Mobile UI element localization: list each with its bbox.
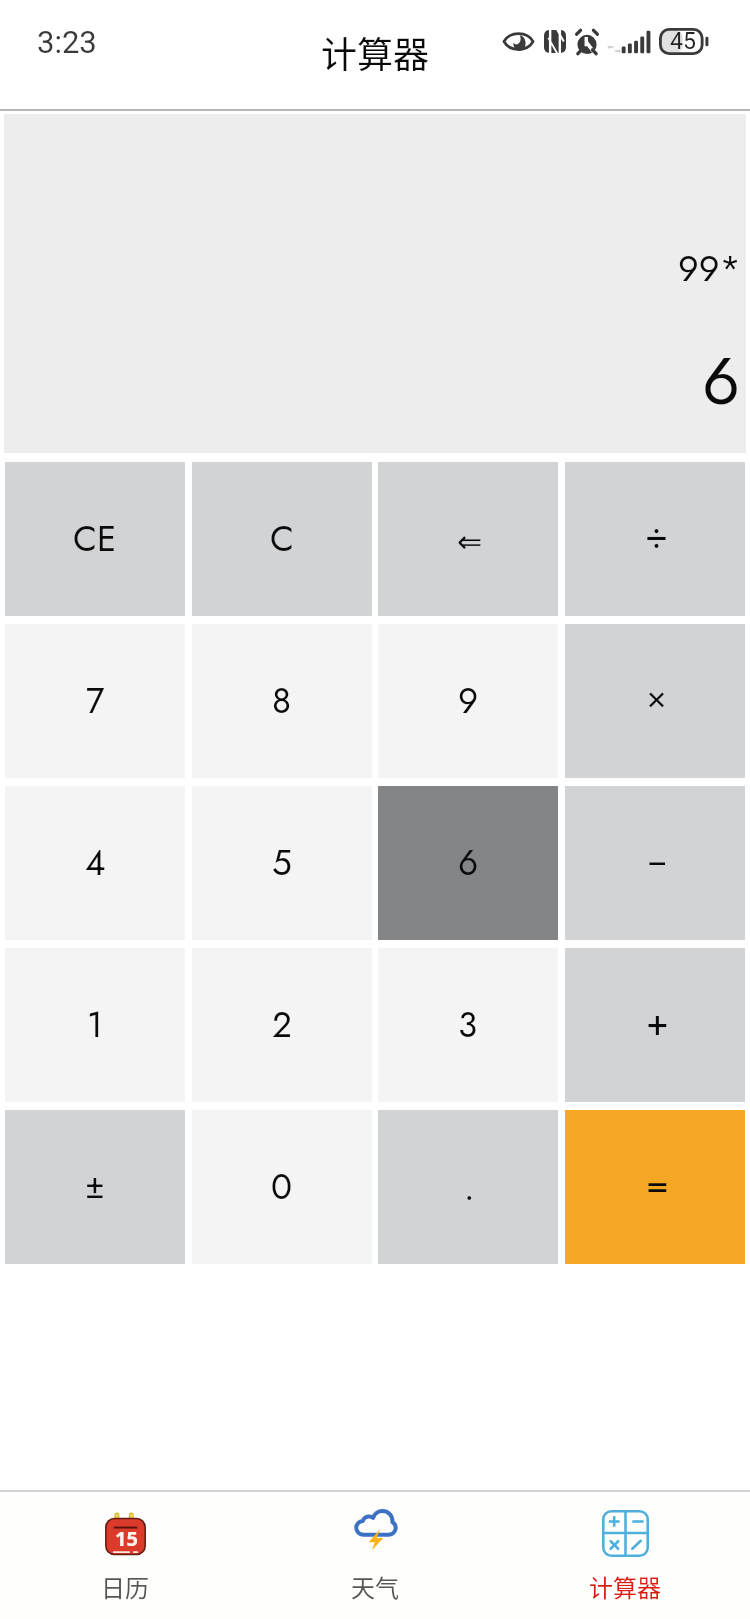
button[interactable]: Plus [565, 948, 745, 1102]
button[interactable]: 6 [378, 786, 558, 940]
button[interactable]: 0 [192, 1110, 372, 1264]
staticText: 9 [458, 676, 479, 727]
button[interactable]: 7 [5, 624, 185, 778]
button[interactable]: 8 [192, 624, 372, 778]
staticText: 45 [670, 28, 696, 55]
staticText: 6 [458, 838, 479, 889]
button[interactable]: 1 [5, 948, 185, 1102]
staticText: ⇐ [457, 524, 483, 559]
button[interactable]: 9 [378, 624, 558, 778]
staticText: 1 [87, 1000, 103, 1051]
button[interactable]: Equals [565, 1110, 745, 1264]
staticText: 3:23 [37, 24, 97, 60]
staticText: 0 [271, 1162, 293, 1213]
staticText: 日历 [101, 1569, 149, 1604]
staticText: 99* [678, 242, 741, 294]
staticText: 2 [272, 1000, 292, 1051]
staticText: 7 [86, 676, 105, 727]
staticText: 天气 [351, 1569, 399, 1604]
staticText: C [270, 514, 294, 565]
button[interactable]: Plus minus [5, 1110, 185, 1264]
staticText: ± [85, 1164, 105, 1210]
button[interactable]: 5 [192, 786, 372, 940]
button[interactable]: Decimal point [378, 1110, 558, 1264]
staticText: . [464, 1163, 475, 1214]
button[interactable]: 计算器 [500, 1492, 750, 1619]
staticText: = [646, 1157, 669, 1210]
staticText: 6 [702, 333, 741, 428]
button[interactable]: Minus [565, 786, 745, 940]
staticText: 15 [115, 1525, 138, 1552]
staticText: 计算器 [589, 1569, 661, 1604]
button[interactable]: Backspace [378, 462, 558, 616]
button[interactable]: Divide [565, 462, 745, 616]
staticText: − [647, 835, 668, 886]
button[interactable]: Multiply [565, 624, 745, 778]
button[interactable]: 15 [0, 1492, 250, 1619]
button[interactable]: 3 [378, 948, 558, 1102]
staticText: + [646, 995, 669, 1048]
button[interactable]: 2 [192, 948, 372, 1102]
staticText: 5 [272, 838, 292, 889]
staticText: CE [73, 514, 117, 565]
button[interactable]: Clear entry [5, 462, 185, 616]
staticText: 计算器 [321, 26, 430, 78]
staticText: 4 [85, 838, 106, 889]
button[interactable]: 天气 [250, 1492, 500, 1619]
button[interactable]: 4 [5, 786, 185, 940]
staticText: 3 [458, 1000, 478, 1051]
button[interactable]: Clear [192, 462, 372, 616]
staticText: ÷ [645, 509, 669, 562]
staticText: × [647, 674, 667, 720]
staticText: 8 [272, 676, 292, 727]
